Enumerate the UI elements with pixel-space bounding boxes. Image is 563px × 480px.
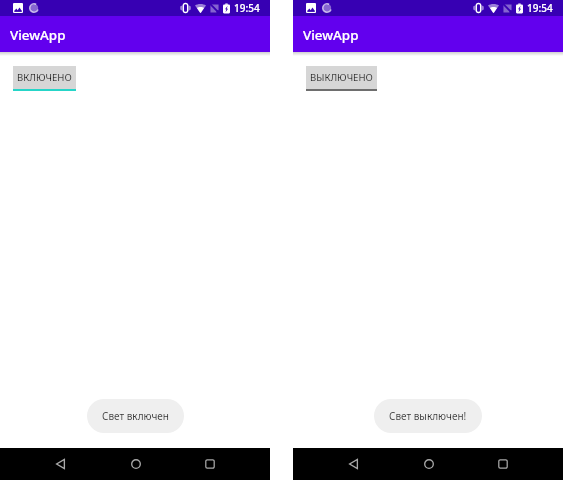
button[interactable]: Back [337, 448, 370, 480]
button[interactable]: Recents [193, 448, 226, 480]
button[interactable]: Recents [486, 448, 519, 480]
staticText: ViewApp [303, 26, 359, 44]
button[interactable]: ВКЛЮЧЕНО [13, 66, 76, 91]
button[interactable]: ВЫКЛЮЧЕНО [306, 66, 377, 91]
button[interactable]: Home [119, 448, 152, 480]
staticText: 19:54 [527, 1, 553, 15]
staticText: Свет выключен! [389, 409, 467, 423]
button[interactable]: Home [412, 448, 445, 480]
staticText: 19:54 [234, 1, 260, 15]
staticText: ВЫКЛЮЧЕНО [310, 71, 373, 84]
button[interactable]: Back [44, 448, 77, 480]
staticText: Свет включен [102, 409, 169, 423]
staticText: ViewApp [10, 26, 66, 44]
staticText: ВКЛЮЧЕНО [17, 71, 72, 84]
